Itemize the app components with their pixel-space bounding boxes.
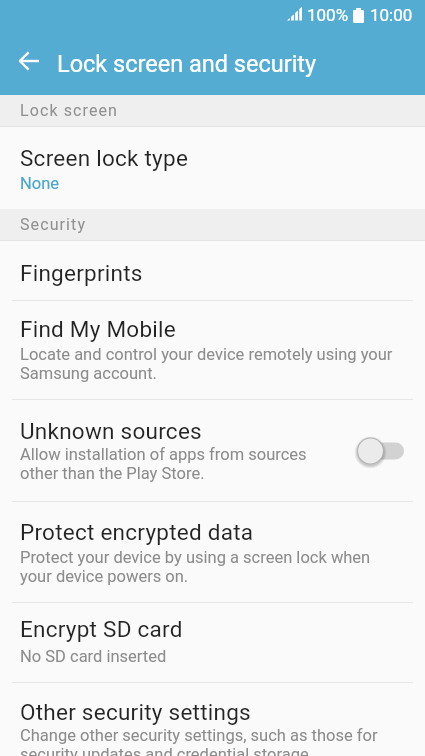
staticText: Find My Mobile [20,316,176,342]
staticText: Lock screen and security [57,50,317,78]
button[interactable]: Encrypt SD card [0,603,425,682]
staticText: Fingerprints [20,260,143,286]
button[interactable]: Find My Mobile [0,301,425,399]
staticText: Change other security settings, such as … [20,726,400,756]
staticText: Screen lock type [20,145,189,171]
staticText: No SD card inserted [20,647,167,666]
button[interactable]: Fingerprints [0,241,425,300]
button[interactable]: Other security settings [0,683,425,756]
button[interactable]: Screen lock type [0,127,425,209]
staticText: Other security settings [20,699,251,725]
button[interactable]: Unknown sources toggle [357,437,404,465]
staticText: Locate and control your device remotely … [20,345,400,383]
button[interactable]: Protect encrypted data [0,502,425,602]
staticText: Security [20,215,87,234]
staticText: Protect encrypted data [20,519,254,545]
staticText: Unknown sources [20,418,202,444]
staticText: None [20,174,60,193]
button[interactable]: Back [7,39,50,82]
staticText: 100% [307,5,349,25]
staticText: Lock screen [20,101,119,120]
staticText: 10:00 [370,5,413,25]
staticText: Encrypt SD card [20,616,183,642]
staticText: Protect your device by using a screen lo… [20,548,400,586]
button[interactable]: Unknown sources [0,400,425,501]
staticText: Allow installation of apps from sources … [20,445,345,483]
